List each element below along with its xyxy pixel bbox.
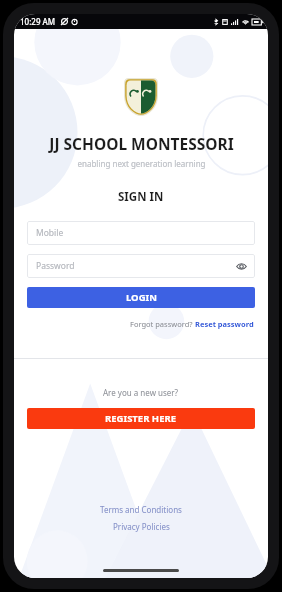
staticText: JJ SCHOOL MONTESSORI	[49, 133, 234, 154]
staticText: Reset password	[195, 319, 254, 329]
staticText: Forgot password?	[130, 319, 195, 329]
button[interactable]: Terms and Conditions	[100, 504, 182, 515]
staticText: Are you a new user?	[103, 387, 179, 398]
staticText: LOGIN	[126, 291, 157, 304]
staticText: 10:29 AM	[20, 16, 56, 27]
staticText: Privacy Policies	[113, 521, 170, 532]
button[interactable]: Reset password	[195, 319, 254, 329]
button[interactable]: LOGIN	[27, 287, 255, 308]
button[interactable]: Password	[27, 254, 255, 278]
staticText: SIGN IN	[118, 189, 164, 205]
staticText: Mobile	[36, 227, 64, 239]
staticText: REGISTER HERE	[105, 412, 177, 425]
button[interactable]: Show password	[235, 260, 247, 272]
staticText: Terms and Conditions	[100, 504, 182, 515]
staticText: enabling next generation learning	[77, 158, 206, 169]
button[interactable]: Privacy Policies	[113, 521, 170, 532]
button[interactable]: REGISTER HERE	[27, 408, 255, 429]
button[interactable]: Mobile	[27, 221, 255, 245]
staticText: Password	[36, 260, 75, 272]
